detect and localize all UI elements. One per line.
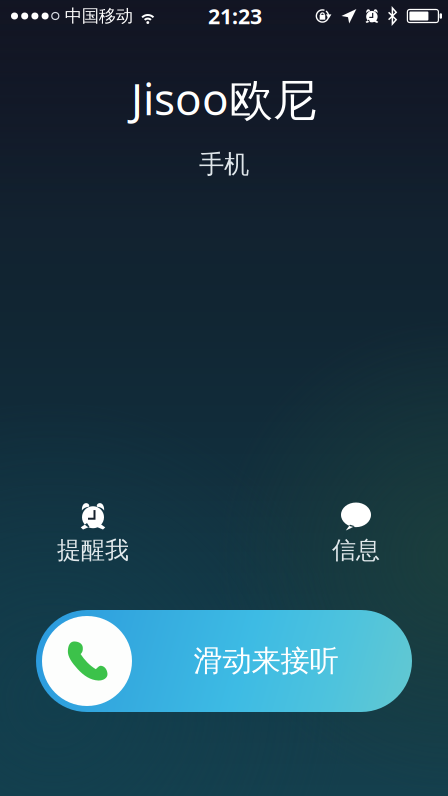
staticText: 滑动来接听 xyxy=(193,643,338,679)
staticText: Jisoo欧尼 xyxy=(131,69,317,128)
staticText: 中国移动 xyxy=(65,5,133,27)
staticText: 21:23 xyxy=(208,2,262,30)
staticText: 手机 xyxy=(199,149,249,180)
button[interactable]: 滑动来接听 xyxy=(36,610,412,712)
staticText: 信息 xyxy=(332,535,380,565)
button[interactable]: 提醒我 xyxy=(28,502,158,565)
staticText: 提醒我 xyxy=(57,535,129,565)
button[interactable]: 信息 xyxy=(291,502,421,565)
